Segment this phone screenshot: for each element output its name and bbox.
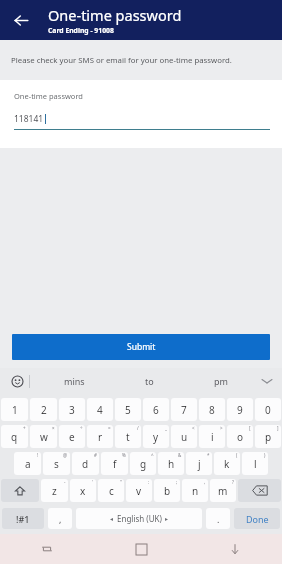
staticText: One-time password bbox=[48, 5, 182, 25]
staticText: Submit bbox=[127, 341, 156, 353]
button[interactable]: a bbox=[14, 452, 41, 475]
staticText: + bbox=[23, 425, 26, 431]
button[interactable]: . bbox=[206, 508, 230, 529]
button[interactable]: q bbox=[1, 425, 28, 448]
staticText: u bbox=[181, 430, 188, 444]
staticText: = bbox=[108, 425, 111, 431]
button[interactable]: Backspace bbox=[238, 479, 281, 502]
staticText: 7 bbox=[181, 403, 187, 417]
staticText: < bbox=[192, 425, 195, 431]
staticText: g bbox=[140, 457, 147, 471]
button[interactable]: 0 bbox=[255, 398, 281, 421]
button[interactable]: p bbox=[255, 425, 281, 448]
button[interactable]: Recents bbox=[32, 534, 62, 564]
button[interactable]: 2 bbox=[30, 398, 57, 421]
button[interactable]: 3 bbox=[59, 398, 85, 421]
staticText: ! bbox=[37, 452, 39, 458]
staticText: & bbox=[178, 452, 182, 458]
staticText: English (UK) bbox=[117, 513, 162, 524]
button[interactable]: Hide keyboard bbox=[220, 534, 250, 564]
button[interactable]: l bbox=[242, 452, 268, 475]
button[interactable]: 7 bbox=[171, 398, 197, 421]
staticText: ' bbox=[92, 479, 94, 485]
button[interactable]: 9 bbox=[227, 398, 253, 421]
button[interactable]: Done bbox=[234, 508, 280, 529]
staticText: 9 bbox=[237, 403, 243, 417]
button[interactable]: g bbox=[130, 452, 156, 475]
button[interactable]: n bbox=[182, 479, 208, 502]
button[interactable]: o bbox=[227, 425, 253, 448]
button[interactable]: Shift bbox=[1, 479, 39, 502]
button[interactable]: i bbox=[199, 425, 225, 448]
button[interactable]: Back bbox=[6, 5, 36, 35]
staticText: 6 bbox=[153, 403, 159, 417]
staticText: y bbox=[153, 430, 159, 444]
staticText: l bbox=[254, 457, 257, 471]
button[interactable]: , bbox=[48, 508, 72, 529]
staticText: t bbox=[126, 430, 130, 444]
button[interactable]: k bbox=[214, 452, 240, 475]
button[interactable]: Expand suggestions bbox=[257, 371, 277, 391]
staticText: / bbox=[137, 425, 139, 431]
button[interactable]: pm bbox=[208, 372, 234, 390]
button[interactable]: c bbox=[98, 479, 124, 502]
staticText: # bbox=[94, 452, 97, 458]
staticText: f bbox=[113, 457, 117, 471]
staticText: !#1 bbox=[16, 513, 30, 525]
staticText: pm bbox=[214, 375, 228, 387]
staticText: Done bbox=[246, 513, 269, 525]
staticText: 5 bbox=[125, 403, 131, 417]
staticText: ( bbox=[236, 452, 238, 458]
button[interactable]: Emoji bbox=[7, 371, 27, 391]
staticText: , bbox=[59, 513, 62, 525]
staticText: ; bbox=[176, 479, 178, 485]
staticText: ◂ bbox=[110, 515, 114, 522]
button[interactable]: 1 bbox=[1, 398, 28, 421]
staticText: ▸ bbox=[165, 515, 169, 522]
staticText: to bbox=[145, 375, 154, 387]
staticText: ] bbox=[277, 425, 279, 431]
staticText: Please check your SMS or email for your … bbox=[11, 55, 232, 66]
staticText: m bbox=[218, 484, 228, 498]
button[interactable]: Submit bbox=[12, 334, 270, 360]
button[interactable]: to bbox=[139, 372, 160, 390]
button[interactable]: Home bbox=[126, 534, 156, 564]
staticText: ? bbox=[232, 479, 234, 485]
button[interactable]: v bbox=[126, 479, 152, 502]
button[interactable]: f bbox=[101, 452, 128, 475]
staticText: : bbox=[148, 479, 150, 485]
button[interactable]: t bbox=[115, 425, 141, 448]
staticText: " bbox=[120, 479, 122, 485]
button[interactable]: 5 bbox=[115, 398, 141, 421]
button[interactable]: !#1 bbox=[2, 508, 44, 529]
staticText: , bbox=[204, 479, 206, 485]
button[interactable]: 4 bbox=[87, 398, 113, 421]
button[interactable]: s bbox=[43, 452, 70, 475]
button[interactable]: 8 bbox=[199, 398, 225, 421]
button[interactable]: w bbox=[30, 425, 57, 448]
staticText: ) bbox=[264, 452, 266, 458]
staticText: 0 bbox=[265, 403, 271, 417]
button[interactable]: ◂ bbox=[76, 508, 202, 529]
button[interactable]: m bbox=[210, 479, 236, 502]
button[interactable]: u bbox=[171, 425, 197, 448]
button[interactable]: 6 bbox=[143, 398, 169, 421]
button[interactable]: mins bbox=[58, 372, 91, 390]
button[interactable]: d bbox=[72, 452, 99, 475]
staticText: b bbox=[164, 484, 171, 498]
button[interactable]: x bbox=[70, 479, 96, 502]
button[interactable]: j bbox=[186, 452, 212, 475]
button[interactable]: h bbox=[158, 452, 184, 475]
button[interactable]: r bbox=[87, 425, 113, 448]
button[interactable]: b bbox=[154, 479, 180, 502]
staticText: r bbox=[98, 430, 103, 444]
button[interactable]: z bbox=[41, 479, 68, 502]
staticText: % bbox=[122, 452, 126, 458]
staticText: c bbox=[109, 484, 114, 498]
staticText: _ bbox=[165, 425, 167, 431]
button[interactable]: y bbox=[143, 425, 169, 448]
staticText: q bbox=[11, 430, 18, 444]
staticText: p bbox=[265, 430, 272, 444]
staticText: ÷ bbox=[80, 425, 83, 431]
button[interactable]: e bbox=[59, 425, 85, 448]
